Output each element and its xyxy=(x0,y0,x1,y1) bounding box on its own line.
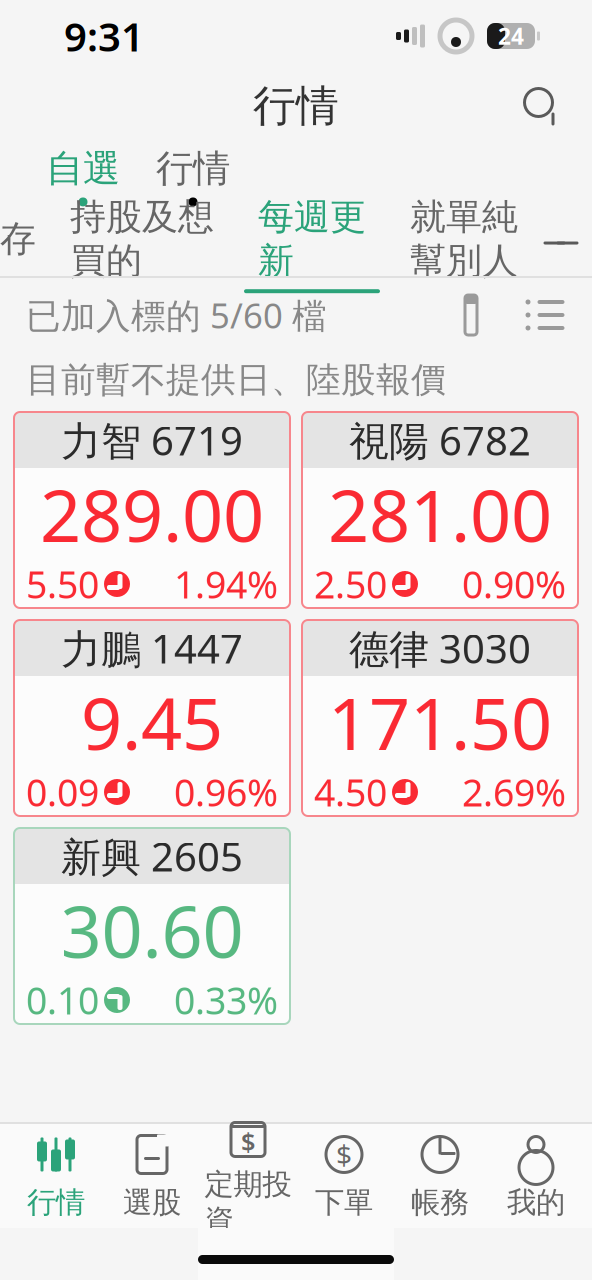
staticText: 1.94% xyxy=(174,559,278,609)
staticText: 行情 xyxy=(253,80,339,132)
button[interactable]: 持股及想買的 xyxy=(70,195,214,293)
button[interactable]: 力智 6719 xyxy=(14,412,290,608)
button[interactable]: 展開分類 xyxy=(530,213,592,275)
button[interactable]: 選股 xyxy=(104,1126,200,1226)
staticText: 9.45 xyxy=(81,674,223,770)
staticText: $ xyxy=(336,1136,352,1173)
staticText: 24 xyxy=(498,21,524,51)
staticText: 自選 xyxy=(46,146,120,191)
staticText: 5.50 xyxy=(26,559,99,609)
staticText: 選股 xyxy=(123,1184,181,1220)
button[interactable]: 德律 3030 xyxy=(302,620,578,816)
button[interactable]: 編輯 xyxy=(440,284,502,346)
staticText: 0.10 xyxy=(26,975,99,1025)
staticText: 視陽 6782 xyxy=(349,413,531,466)
staticText: 281.00 xyxy=(328,466,552,562)
button[interactable]: 每週更新 xyxy=(244,195,380,293)
staticText: 行情 xyxy=(27,1184,85,1220)
button[interactable]: 力鵬 1447 xyxy=(14,620,290,816)
staticText: 行情 xyxy=(156,146,230,191)
staticText: 9:31 xyxy=(64,9,144,62)
staticText: 德律 3030 xyxy=(349,621,531,674)
staticText: 4.50 xyxy=(314,767,387,817)
button[interactable]: 存 xyxy=(0,217,36,271)
staticText: 存 xyxy=(0,217,36,261)
staticText: 已加入標的 5/60 檔 xyxy=(26,292,327,338)
staticText: 定期投資 xyxy=(204,1166,291,1239)
button[interactable]: $ xyxy=(296,1126,392,1226)
staticText: 0.09 xyxy=(26,767,99,817)
button[interactable]: 視陽 6782 xyxy=(302,412,578,608)
staticText: 每週更新 xyxy=(258,195,366,283)
button[interactable]: 就單純幫別人 xyxy=(410,195,518,293)
staticText: 30.60 xyxy=(60,882,243,978)
staticText: 新興 2605 xyxy=(61,829,243,882)
staticText: 0.96% xyxy=(174,767,278,817)
staticText: 我的 xyxy=(507,1184,565,1220)
button[interactable]: 切換檢視 xyxy=(514,284,576,346)
staticText: 0.33% xyxy=(174,975,278,1025)
staticText: $ xyxy=(241,1125,255,1158)
staticText: 2.69% xyxy=(462,767,566,817)
staticText: 171.50 xyxy=(328,674,552,770)
button[interactable]: 搜尋 xyxy=(510,74,574,138)
staticText: 0.90% xyxy=(462,559,566,609)
button[interactable]: 行情 xyxy=(8,1126,104,1226)
button[interactable]: 新興 2605 xyxy=(14,828,290,1024)
button[interactable]: $ xyxy=(200,1126,296,1226)
staticText: 2.50 xyxy=(314,559,387,609)
button[interactable]: 自選 xyxy=(42,146,124,206)
staticText: 下單 xyxy=(315,1184,373,1220)
staticText: 力鵬 1447 xyxy=(61,621,243,674)
staticText: 目前暫不提供日、陸股報價 xyxy=(26,359,446,401)
button[interactable]: 行情 xyxy=(152,146,234,206)
button[interactable]: 帳務 xyxy=(392,1126,488,1226)
staticText: 力智 6719 xyxy=(61,413,243,466)
button[interactable]: 我的 xyxy=(488,1126,584,1226)
staticText: 就單純幫別人 xyxy=(410,195,518,283)
staticText: 持股及想買的 xyxy=(70,195,214,283)
staticText: 289.00 xyxy=(40,466,264,562)
staticText: 帳務 xyxy=(411,1184,469,1220)
